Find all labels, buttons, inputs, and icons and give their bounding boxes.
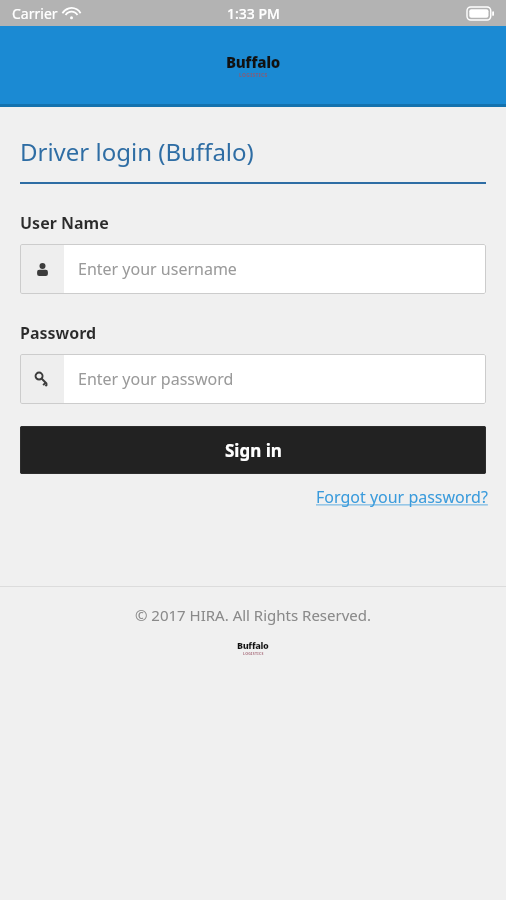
staticText: LOGISTICS (243, 651, 264, 656)
staticText: Buffalo (237, 639, 269, 651)
button[interactable]: Enter your password (20, 354, 486, 404)
staticText: © 2017 HIRA. All Rights Reserved. (0, 605, 506, 625)
staticText: Enter your password (78, 368, 234, 390)
staticText: LOGISTICS (239, 72, 268, 79)
button[interactable]: Enter your username (20, 244, 486, 294)
button[interactable]: Forgot your password? (316, 486, 488, 508)
staticText: Carrier (12, 4, 58, 23)
staticText: 1:33 PM (227, 4, 280, 23)
button[interactable]: Sign in (20, 426, 486, 474)
staticText: Sign in (225, 439, 282, 462)
staticText: User Name (20, 212, 109, 234)
staticText: Buffalo (226, 52, 280, 72)
staticText: Forgot your password? (316, 486, 488, 508)
staticText: Enter your username (78, 258, 237, 280)
staticText: Driver login (Buffalo) (20, 135, 254, 168)
staticText: Password (20, 322, 97, 344)
